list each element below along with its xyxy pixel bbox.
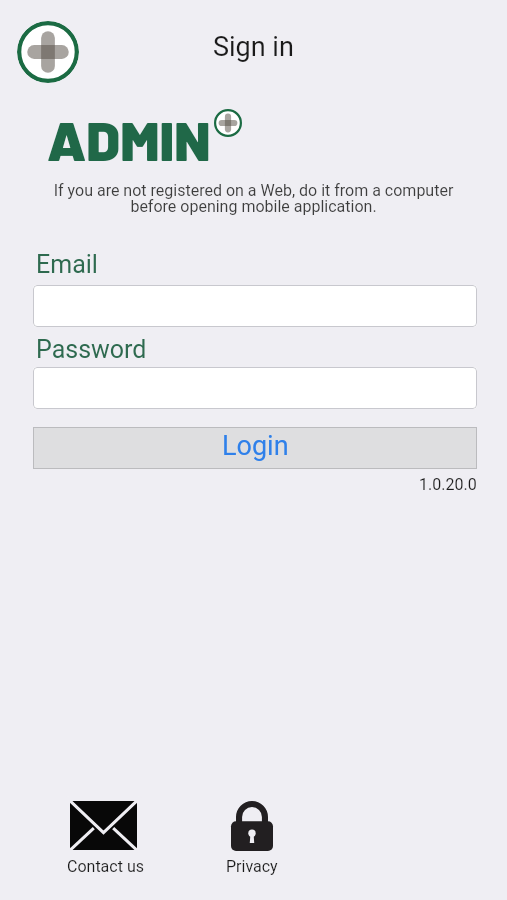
staticText: Contact us bbox=[67, 857, 144, 876]
staticText: Email bbox=[36, 250, 98, 279]
button[interactable]: App logo bbox=[17, 21, 79, 83]
button[interactable]: Email input bbox=[33, 285, 477, 327]
staticText: 1.0.20.0 bbox=[419, 475, 477, 494]
staticText: Password bbox=[36, 335, 147, 364]
button[interactable]: Login bbox=[33, 427, 477, 469]
button[interactable]: Contact us bbox=[39, 795, 167, 876]
staticText: Login bbox=[222, 430, 289, 462]
staticText: If you are not registered on a Web, do i… bbox=[20, 181, 487, 216]
button[interactable]: Privacy bbox=[188, 795, 316, 876]
staticText: Sign in bbox=[213, 31, 294, 63]
staticText: ADMIN bbox=[47, 106, 211, 172]
staticText: Privacy bbox=[226, 857, 278, 876]
button[interactable]: Password input bbox=[33, 367, 477, 409]
